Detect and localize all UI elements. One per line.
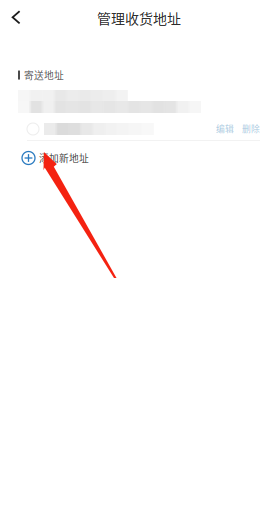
button[interactable]: 编辑 [216, 122, 234, 135]
staticText: 管理收货地址 [97, 8, 181, 28]
staticText: 添加新地址 [39, 151, 89, 165]
staticText: 编辑 [216, 122, 234, 135]
staticText: 删除 [242, 122, 260, 135]
button[interactable]: 添加新地址 [0, 146, 278, 170]
staticText: 寄送地址 [24, 68, 64, 82]
button[interactable]: 返回 [11, 10, 21, 25]
button[interactable]: 删除 [242, 122, 260, 135]
